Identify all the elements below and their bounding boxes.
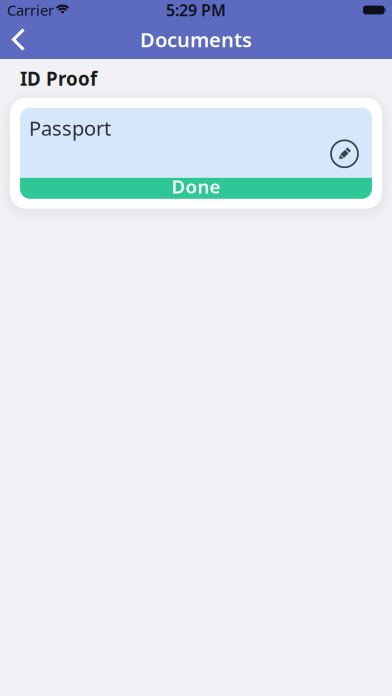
staticText: 5:29 PM <box>166 0 226 21</box>
staticText: Documents <box>140 26 252 53</box>
staticText: Done <box>171 174 220 199</box>
button[interactable] <box>330 139 359 168</box>
button[interactable]: Done <box>20 178 372 199</box>
staticText: Passport <box>29 115 111 141</box>
staticText: ID Proof <box>20 66 97 91</box>
button[interactable] <box>0 20 40 59</box>
staticText: Carrier <box>7 0 54 20</box>
